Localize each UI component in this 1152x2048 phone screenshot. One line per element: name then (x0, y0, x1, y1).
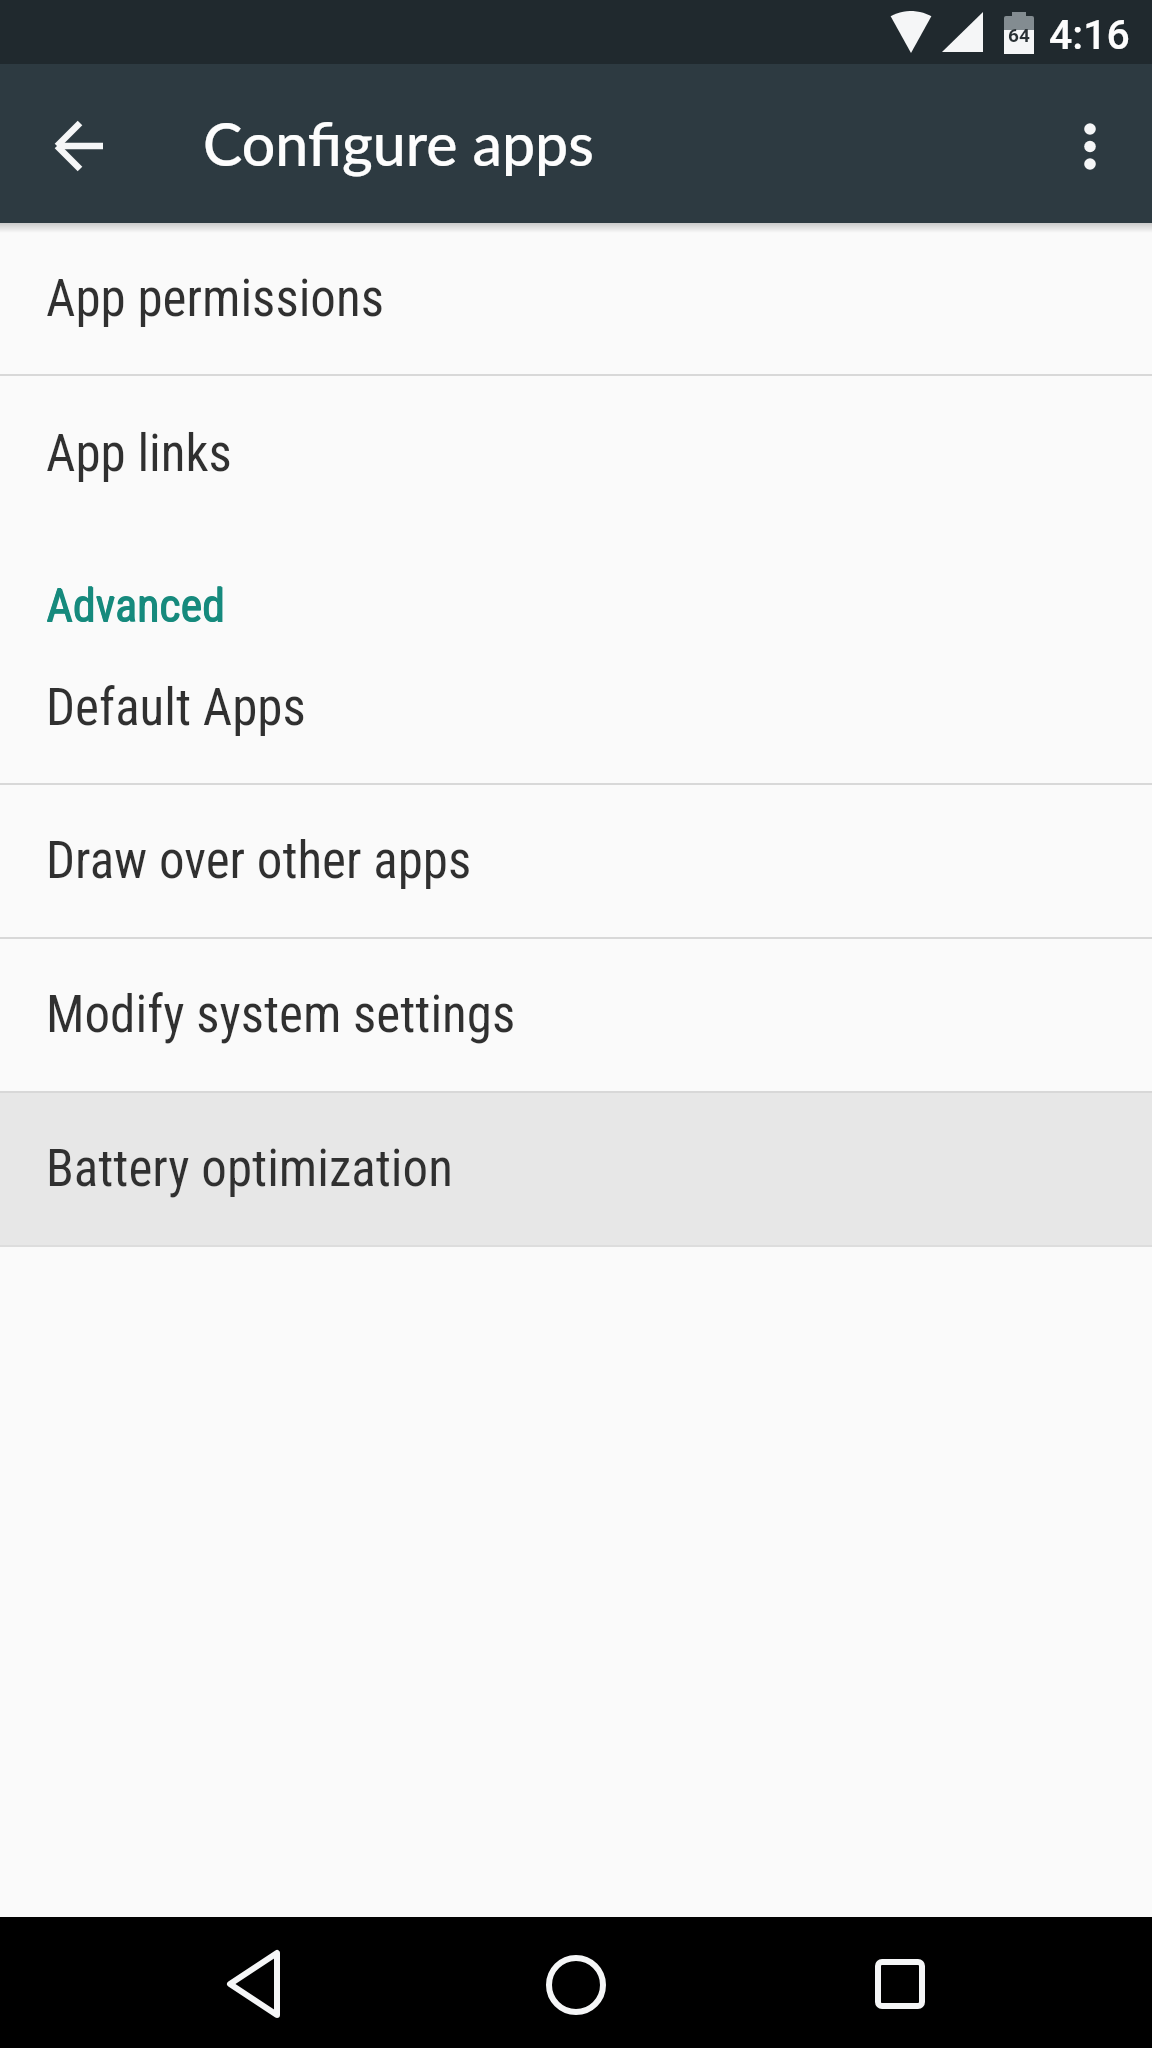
staticText: Battery optimization (46, 1139, 453, 1199)
button[interactable]: Default Apps (0, 633, 1152, 783)
staticText: 64 (1005, 24, 1033, 46)
staticText: Advanced (46, 578, 225, 632)
staticText: Advanced (46, 579, 225, 633)
button[interactable]: Battery optimization (0, 1093, 1152, 1245)
staticText: App links (46, 424, 232, 484)
button[interactable] (1055, 100, 1125, 192)
button[interactable]: Modify system settings (0, 939, 1152, 1091)
button[interactable] (32, 98, 128, 194)
staticText: Default Apps (46, 678, 306, 738)
button[interactable] (384, 1917, 768, 2048)
staticText: 4:16 (1049, 11, 1130, 59)
button[interactable] (768, 1917, 1152, 2048)
button[interactable]: App links (0, 376, 1152, 532)
button[interactable] (0, 1917, 384, 2048)
button[interactable]: App permissions (0, 223, 1152, 374)
staticText: Draw over other apps (46, 831, 472, 891)
staticText: App permissions (46, 269, 384, 329)
button[interactable]: Draw over other apps (0, 785, 1152, 937)
staticText: Advanced (47, 579, 226, 633)
staticText: Modify system settings (46, 985, 516, 1045)
staticText: Configure apps (203, 108, 594, 179)
